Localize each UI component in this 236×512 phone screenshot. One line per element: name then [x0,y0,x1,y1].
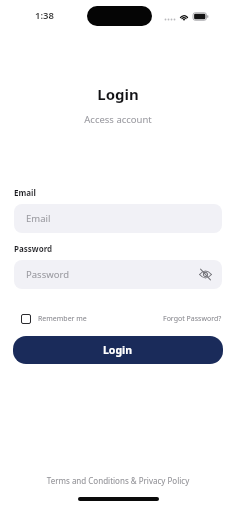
button[interactable]: Remember me [14,314,87,324]
button[interactable]: Terms and Conditions & Privacy Policy [0,475,236,486]
staticText: Login [103,343,133,357]
button[interactable]: Login [13,336,223,364]
staticText: Email [26,212,51,225]
staticText: 1:38 [35,9,54,22]
staticText: Password [26,268,69,281]
staticText: Remember me [38,314,87,324]
staticText: Password [14,243,53,254]
button[interactable]: Email [14,204,222,233]
button[interactable] [199,268,212,281]
button[interactable]: Password [14,260,222,289]
button[interactable]: Forgot Password? [163,314,222,324]
staticText: Login [0,84,236,104]
staticText: Access account [0,113,236,126]
staticText: Email [14,187,36,198]
